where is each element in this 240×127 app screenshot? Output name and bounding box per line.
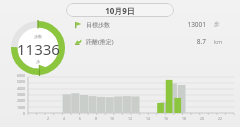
button[interactable]: 距離(推定): [74, 36, 234, 47]
staticText: 歩: [214, 21, 228, 28]
staticText: 16: [164, 116, 169, 121]
staticText: 12: [128, 116, 133, 121]
staticText: 18: [182, 116, 187, 121]
staticText: 目標歩数: [86, 21, 110, 29]
staticText: 8: [95, 116, 98, 121]
button[interactable]: 10月9日: [66, 3, 174, 17]
staticText: 14: [146, 116, 151, 121]
button[interactable]: 歩数: [7, 17, 69, 79]
staticText: 2000: [17, 98, 26, 103]
staticText: 22: [218, 116, 223, 121]
staticText: 4000: [17, 86, 26, 91]
staticText: 13001: [178, 20, 206, 29]
staticText: 4: [63, 116, 66, 121]
staticText: 2: [47, 116, 50, 121]
staticText: 11336: [17, 39, 60, 59]
staticText: 0: [23, 111, 26, 116]
staticText: 3000: [17, 92, 26, 97]
staticText: km: [214, 38, 228, 45]
staticText: 20: [200, 116, 205, 121]
staticText: 6000: [17, 73, 26, 78]
staticText: 8.7: [178, 37, 206, 46]
staticText: 10: [110, 116, 115, 121]
staticText: 10月9日: [105, 5, 135, 16]
staticText: 5000: [17, 79, 26, 84]
staticText: 距離(推定): [86, 38, 114, 46]
staticText: 歩数: [34, 34, 42, 39]
staticText: 1000: [17, 105, 26, 110]
staticText: 歩: [36, 59, 40, 64]
button[interactable]: 目標歩数: [74, 19, 234, 30]
staticText: 6: [79, 116, 82, 121]
